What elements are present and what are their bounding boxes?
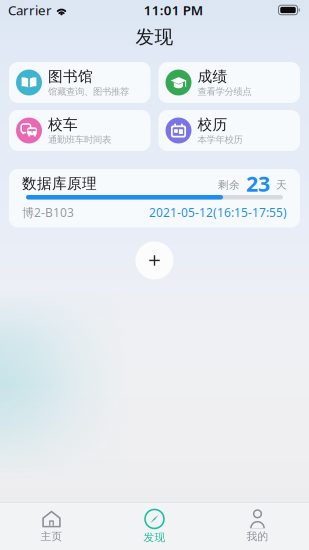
staticText: 2021-05-12(16:15-17:55) (149, 204, 287, 220)
staticText: 发现 (135, 25, 173, 48)
staticText: 查看学分绩点 (197, 86, 251, 97)
button[interactable]: 主页 (0, 503, 103, 550)
button[interactable]: 我的 (206, 503, 309, 550)
staticText: 23 (240, 169, 276, 198)
staticText: 本学年校历 (197, 134, 242, 145)
staticText: 天 (276, 178, 287, 191)
button[interactable]: 校车 (9, 110, 150, 151)
staticText: 发现 (143, 531, 165, 544)
staticText: 我的 (246, 530, 268, 543)
staticText: 11:01 PM (144, 1, 203, 19)
staticText: 剩余 (218, 178, 240, 191)
button[interactable]: 校历 (158, 110, 300, 151)
staticText: 校历 (197, 115, 227, 133)
staticText: 馆藏查询、图书推荐 (48, 86, 129, 97)
staticText: 博2-B103 (22, 204, 74, 220)
staticText: Carrier (8, 1, 52, 19)
staticText: 数据库原理 (22, 174, 97, 192)
staticText: 成绩 (197, 67, 227, 85)
button[interactable]: 图书馆 (9, 62, 150, 103)
staticText: 校车 (48, 115, 78, 133)
button[interactable]: 成绩 (158, 62, 300, 103)
button[interactable]: 数据库原理 (9, 169, 300, 227)
staticText: 图书馆 (48, 67, 93, 85)
staticText: 通勤班车时间表 (48, 134, 111, 145)
button[interactable]: 发现 (103, 503, 206, 550)
button[interactable]: Add (132, 238, 176, 282)
staticText: 主页 (40, 530, 62, 543)
